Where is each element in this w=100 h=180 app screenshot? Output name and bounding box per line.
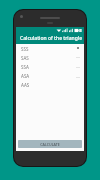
- button[interactable]: AAS: [17, 80, 81, 89]
- button[interactable]: SAS: [17, 53, 81, 62]
- button[interactable]: ASA: [17, 71, 81, 80]
- staticText: CALCULATE: [40, 142, 60, 147]
- staticText: Calculation of the triangle: [20, 35, 82, 42]
- staticText: SSS: [21, 46, 29, 52]
- staticText: ASA: [21, 73, 30, 79]
- button[interactable]: SSS: [17, 44, 81, 53]
- button[interactable]: CALCULATE: [18, 140, 82, 148]
- staticText: SSA: [21, 64, 29, 70]
- staticText: AAS: [21, 82, 30, 88]
- button[interactable]: SSA: [17, 62, 81, 71]
- staticText: SAS: [21, 55, 29, 61]
